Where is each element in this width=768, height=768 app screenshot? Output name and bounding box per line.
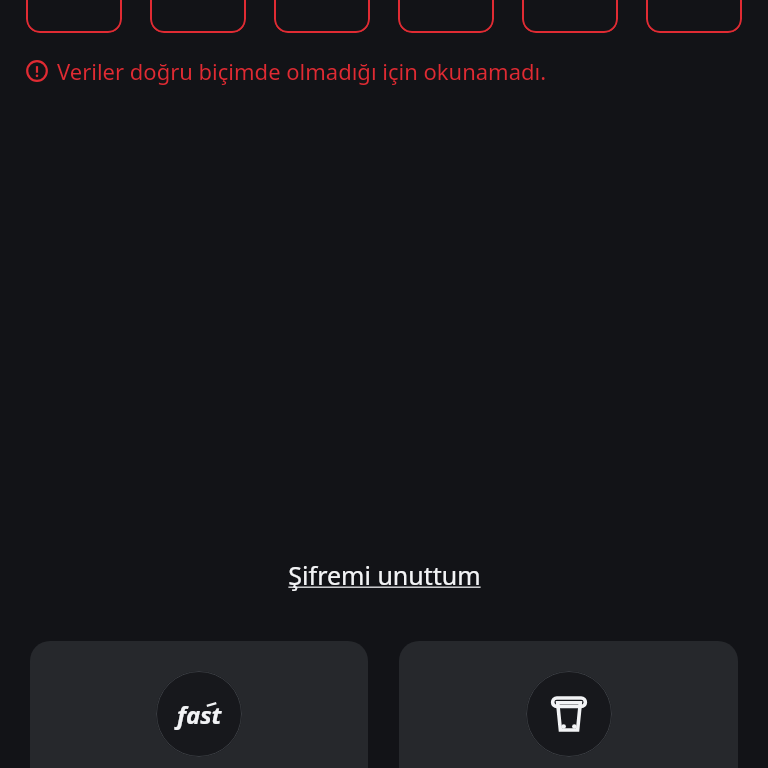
staticText: fast — [177, 698, 222, 731]
staticText: Şifremi unuttum — [288, 558, 481, 592]
button[interactable] — [646, 0, 742, 33]
button[interactable]: Şifremi unuttum — [282, 556, 487, 594]
button[interactable] — [522, 0, 618, 33]
button[interactable] — [274, 0, 370, 33]
button[interactable]: Kartsız işlem — [399, 641, 738, 768]
button[interactable] — [150, 0, 246, 33]
button[interactable] — [398, 0, 494, 33]
button[interactable]: FAST — [30, 641, 368, 768]
staticText: Veriler doğru biçimde olmadığı için okun… — [57, 56, 547, 86]
button[interactable] — [26, 0, 122, 33]
